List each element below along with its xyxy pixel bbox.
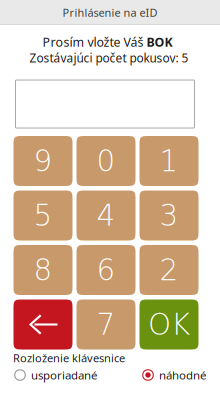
staticText: Zostávajúci počet pokusov: 5 <box>29 50 188 66</box>
staticText: 6 <box>96 253 115 287</box>
staticText: 7 <box>96 307 115 341</box>
staticText: 1 <box>159 144 178 178</box>
staticText: BOK <box>146 34 172 50</box>
staticText: náhodné <box>159 367 206 383</box>
staticText: OK <box>148 307 190 341</box>
button[interactable]: 7 <box>76 299 135 349</box>
button[interactable]: OK <box>139 299 198 349</box>
button[interactable]: Prihlásenie na eID <box>0 0 220 25</box>
button[interactable]: 0 <box>76 136 135 186</box>
staticText: 0 <box>96 144 115 178</box>
button[interactable]: 1 <box>139 136 198 186</box>
staticText: 4 <box>96 198 115 232</box>
staticText: Prihlásenie na eID <box>62 5 157 20</box>
staticText: Rozloženie klávesnice <box>13 350 125 366</box>
button[interactable]: Vymazať <box>13 299 72 349</box>
staticText: 5 <box>33 198 52 232</box>
button[interactable]: náhodné <box>142 367 206 383</box>
staticText: 8 <box>33 253 52 287</box>
button[interactable]: 9 <box>13 136 72 186</box>
staticText: 9 <box>33 144 52 178</box>
staticText: usporiadané <box>31 367 97 383</box>
button[interactable]: 8 <box>13 245 72 295</box>
button[interactable]: usporiadané <box>14 367 97 383</box>
staticText: Prosím vložte Váš <box>42 34 146 50</box>
button[interactable]: 3 <box>139 190 198 240</box>
button[interactable]: 6 <box>76 245 135 295</box>
button[interactable]: 2 <box>139 245 198 295</box>
button[interactable]: 5 <box>13 190 72 240</box>
staticText: 3 <box>159 198 178 232</box>
button[interactable]: 4 <box>76 190 135 240</box>
staticText: 2 <box>159 253 178 287</box>
